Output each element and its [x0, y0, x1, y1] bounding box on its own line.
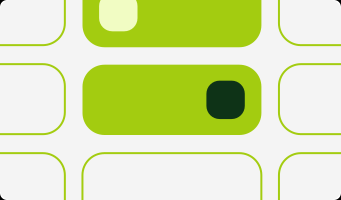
button[interactable]: Setting off: [82, 0, 261, 47]
button[interactable]: Setting on: [82, 65, 261, 135]
